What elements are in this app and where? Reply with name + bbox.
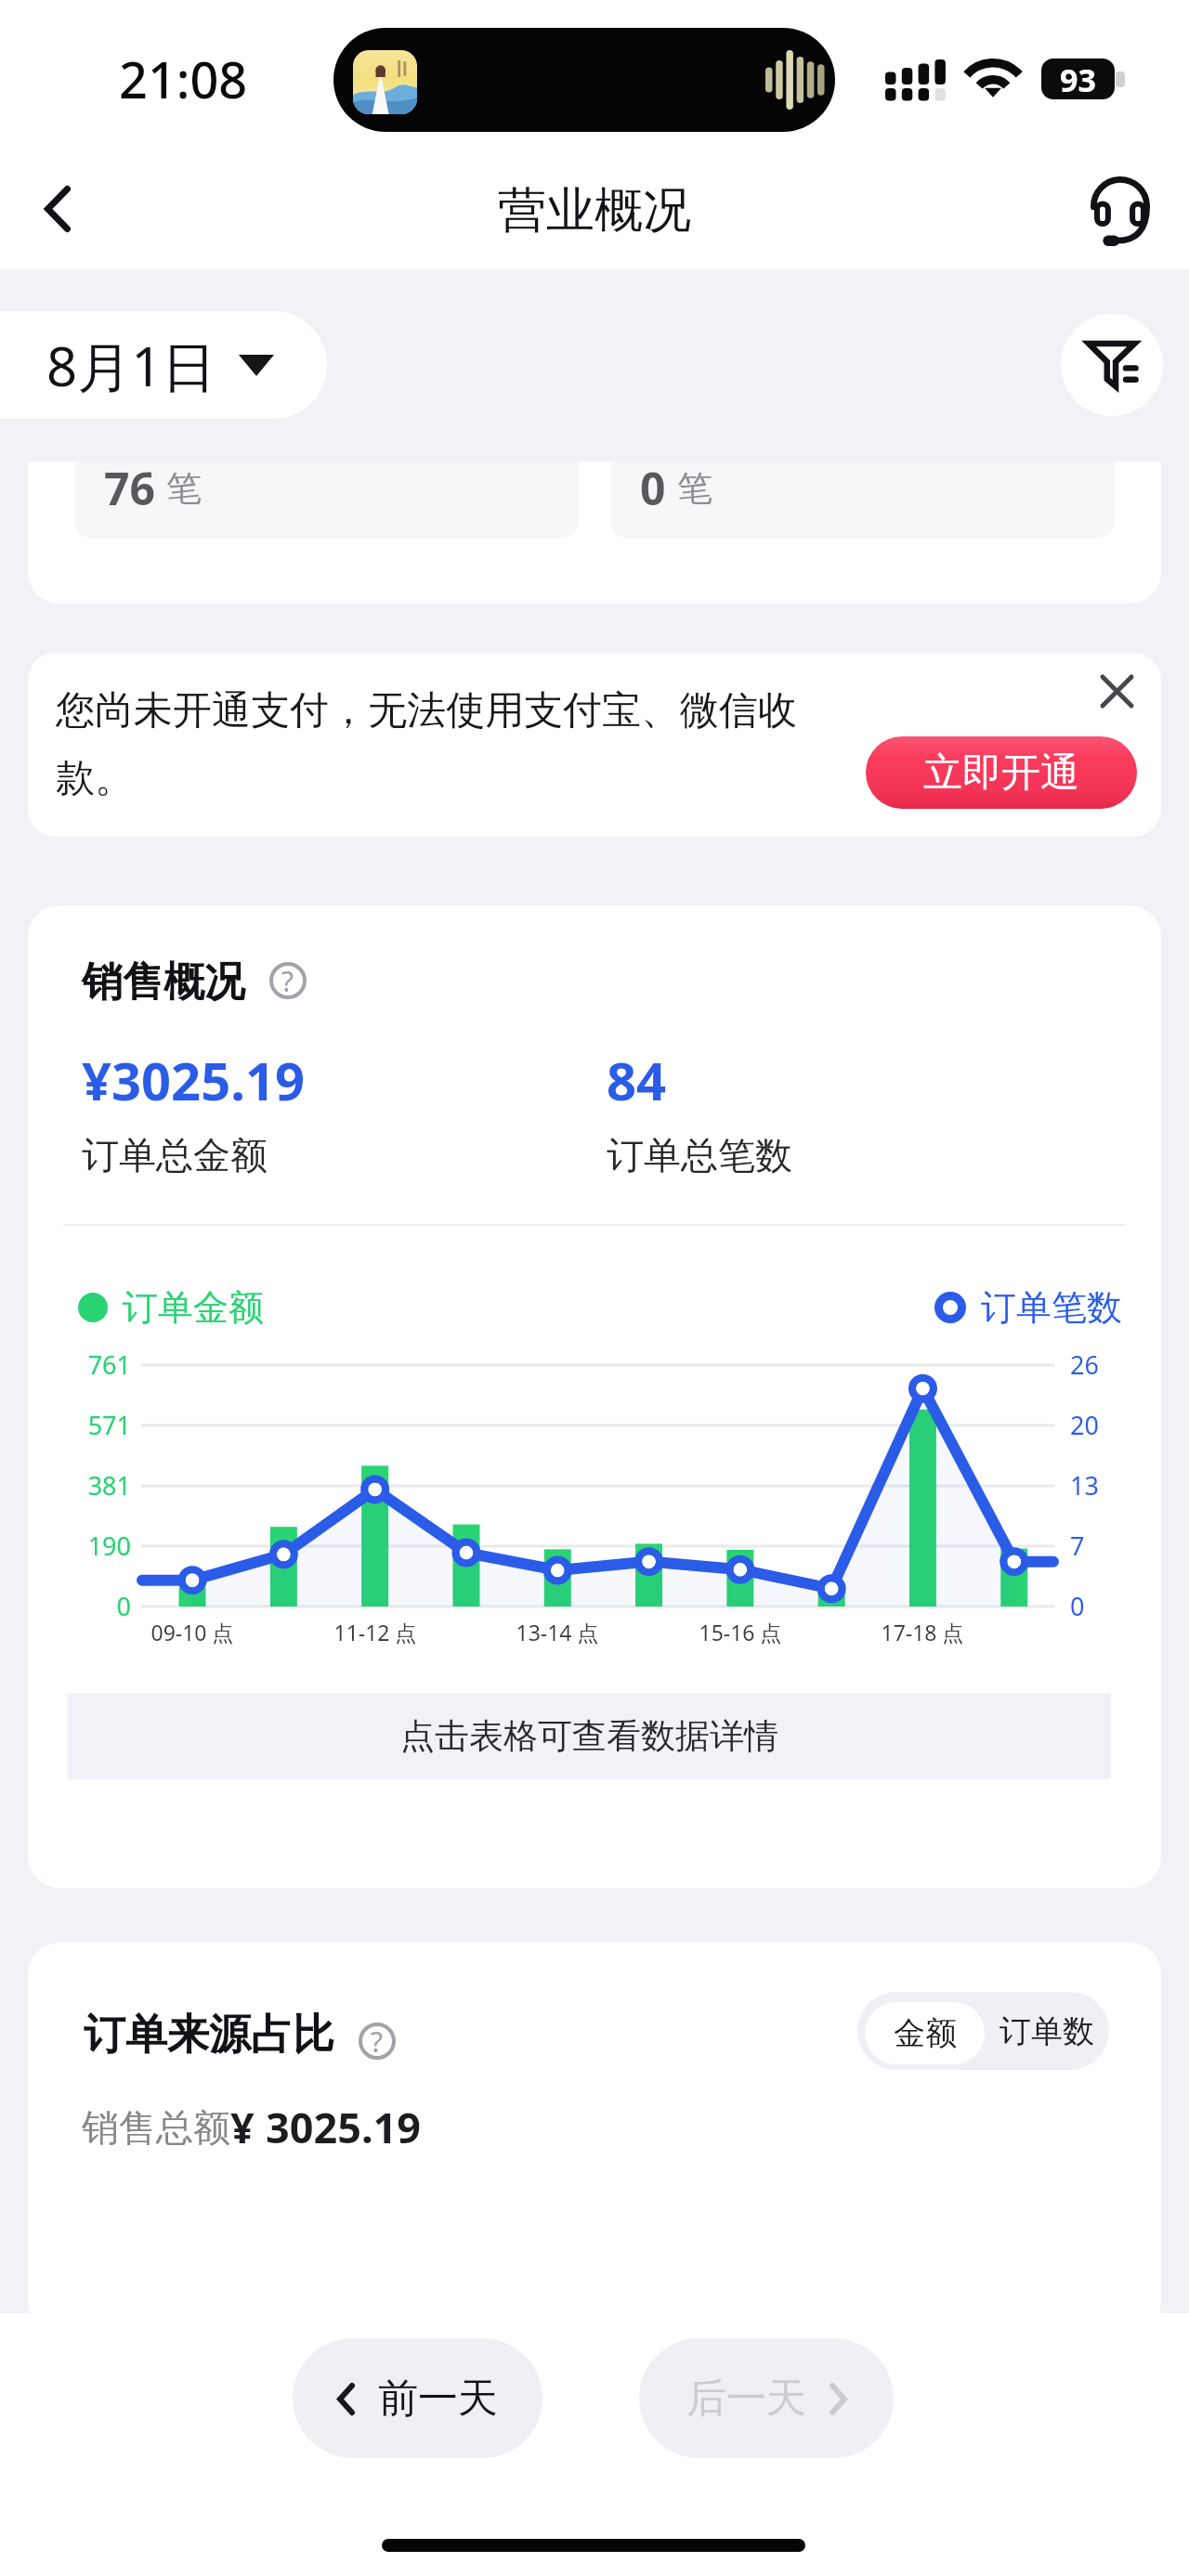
staticText: 26: [1070, 1347, 1144, 1382]
staticText: 订单数: [1000, 2011, 1094, 2051]
staticText: 后一天: [686, 2374, 806, 2424]
button[interactable]: 点击表格可查看数据详情: [67, 1693, 1111, 1779]
staticText: 订单笔数: [981, 1285, 1122, 1330]
staticText: 销售总额: [82, 2104, 230, 2151]
staticText: 09-10 点: [90, 1618, 294, 1646]
staticText: 93: [1060, 59, 1096, 99]
staticText: 金额: [894, 2013, 957, 2053]
staticText: 84: [607, 1045, 667, 1115]
staticText: 0: [28, 1589, 131, 1623]
button[interactable]: 前一天: [293, 2338, 542, 2458]
staticText: ?: [281, 962, 294, 999]
staticText: 381: [28, 1468, 131, 1503]
staticText: 76: [104, 462, 155, 518]
staticText: 21:08: [119, 45, 248, 113]
staticText: 190: [28, 1529, 131, 1563]
staticText: 您尚未开通支付，无法使用支付宝、微信收款。: [56, 686, 799, 802]
staticText: 13: [1070, 1468, 1144, 1503]
staticText: 笔: [677, 466, 712, 511]
staticText: 0: [640, 462, 666, 518]
staticText: 20: [1070, 1408, 1144, 1442]
staticText: 订单总笔数: [607, 1132, 792, 1178]
staticText: 7: [1070, 1529, 1144, 1563]
button[interactable]: Back: [13, 164, 102, 254]
staticText: 13-14 点: [455, 1618, 660, 1646]
staticText: 11-12 点: [273, 1618, 477, 1646]
staticText: 571: [28, 1408, 131, 1442]
staticText: 前一天: [378, 2374, 498, 2424]
staticText: ?: [371, 2023, 384, 2060]
button[interactable]: 金额: [865, 2002, 985, 2064]
staticText: 15-16 点: [638, 1618, 843, 1646]
button[interactable]: 后一天: [639, 2338, 894, 2458]
staticText: ¥: [230, 2099, 266, 2155]
staticText: 0: [1070, 1589, 1144, 1623]
button[interactable]: Filter: [1061, 314, 1163, 416]
button[interactable]: Customer service: [1076, 164, 1165, 254]
staticText: 销售概况: [82, 956, 245, 1008]
staticText: 立即开通: [923, 748, 1079, 798]
staticText: 订单金额: [123, 1285, 264, 1330]
staticText: ¥3025.19: [82, 1045, 305, 1115]
staticText: 761: [28, 1347, 131, 1382]
staticText: 笔: [166, 466, 202, 511]
staticText: 3025.19: [266, 2099, 422, 2155]
staticText: 8月1日: [46, 329, 216, 402]
button[interactable]: 立即开通: [866, 736, 1137, 809]
button[interactable]: Close: [1084, 658, 1149, 723]
staticText: 订单来源占比: [84, 2009, 334, 2062]
staticText: 17-18 点: [820, 1618, 1025, 1646]
button[interactable]: 订单数: [985, 1992, 1109, 2070]
staticText: 订单总金额: [82, 1132, 268, 1178]
staticText: 营业概况: [498, 180, 691, 241]
button[interactable]: 8月1日: [0, 311, 327, 419]
staticText: 点击表格可查看数据详情: [400, 1714, 778, 1758]
